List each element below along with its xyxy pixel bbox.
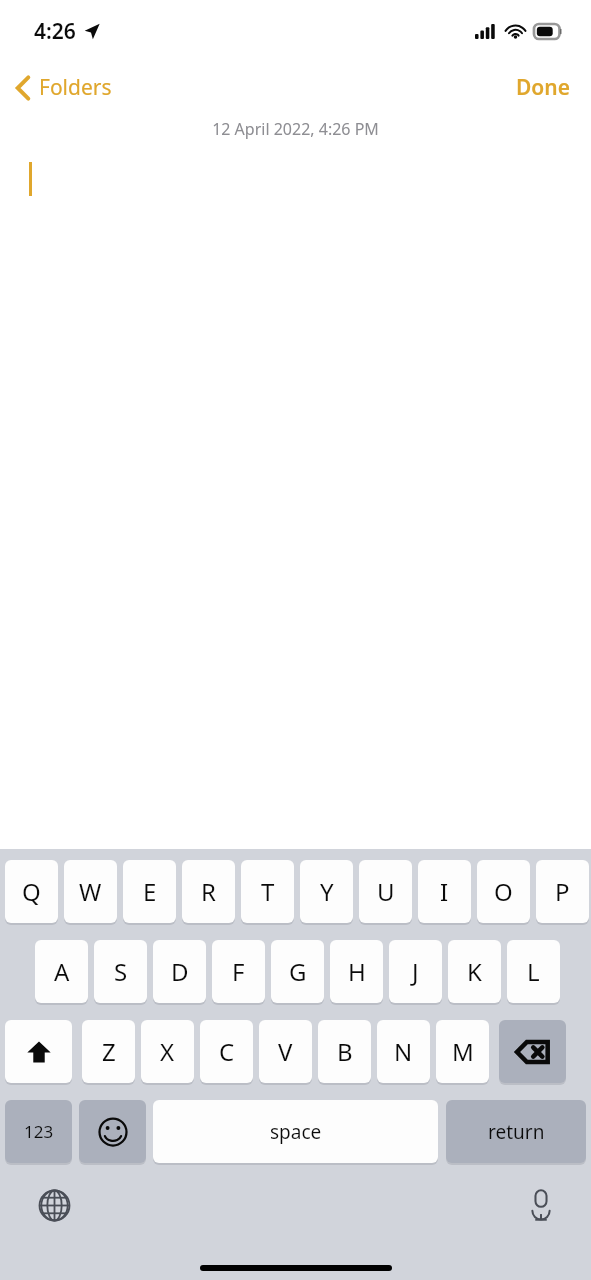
staticText: Folders [39, 73, 112, 102]
button[interactable]: Switch keyboard language [30, 1181, 79, 1230]
staticText: Z [102, 1035, 116, 1068]
button[interactable]: Emoji [79, 1100, 146, 1163]
staticText: A [54, 955, 70, 988]
staticText: 12 April 2022, 4:26 PM [212, 118, 379, 140]
button[interactable]: B [318, 1020, 371, 1083]
button[interactable]: A [35, 940, 88, 1003]
staticText: F [232, 955, 245, 988]
staticText: I [440, 875, 449, 908]
button[interactable]: K [448, 940, 501, 1003]
staticText: W [79, 875, 102, 908]
button[interactable]: U [359, 860, 412, 923]
button[interactable]: J [389, 940, 442, 1003]
button[interactable]: Y [300, 860, 353, 923]
button[interactable]: N [377, 1020, 430, 1083]
button[interactable]: F [212, 940, 265, 1003]
staticText: O [494, 875, 513, 908]
staticText: D [171, 955, 189, 988]
button[interactable]: Shift [5, 1020, 72, 1083]
button[interactable]: S [94, 940, 147, 1003]
button[interactable]: X [141, 1020, 194, 1083]
staticText: J [412, 955, 419, 988]
button[interactable]: Backspace [499, 1020, 566, 1083]
button[interactable]: R [182, 860, 235, 923]
staticText: Q [22, 875, 41, 908]
button[interactable]: return [446, 1100, 586, 1163]
button[interactable]: Q [5, 860, 58, 923]
button[interactable]: Dictation [521, 1181, 561, 1230]
button[interactable]: 123 [5, 1100, 72, 1163]
staticText: B [337, 1035, 353, 1068]
staticText: G [289, 955, 307, 988]
button[interactable]: space [153, 1100, 438, 1163]
staticText: V [278, 1035, 293, 1068]
button[interactable]: D [153, 940, 206, 1003]
button[interactable]: E [123, 860, 176, 923]
staticText: 123 [24, 1120, 54, 1143]
staticText: M [452, 1035, 474, 1068]
staticText: P [555, 875, 570, 908]
staticText: R [201, 875, 216, 908]
staticText: S [114, 955, 128, 988]
button[interactable]: L [507, 940, 560, 1003]
button[interactable]: P [536, 860, 589, 923]
button[interactable]: H [330, 940, 383, 1003]
staticText: return [488, 1119, 545, 1145]
staticText: Done [516, 73, 571, 102]
staticText: N [394, 1035, 413, 1068]
staticText: L [527, 955, 540, 988]
button[interactable]: T [241, 860, 294, 923]
button[interactable]: W [64, 860, 117, 923]
staticText: U [377, 875, 395, 908]
button[interactable]: Z [82, 1020, 135, 1083]
button[interactable]: G [271, 940, 324, 1003]
staticText: C [219, 1035, 235, 1068]
button[interactable]: Folders [0, 67, 124, 108]
staticText: X [160, 1035, 175, 1068]
staticText: space [270, 1119, 322, 1145]
button[interactable]: V [259, 1020, 312, 1083]
staticText: Y [320, 875, 334, 908]
staticText: H [348, 955, 366, 988]
staticText: K [467, 955, 482, 988]
staticText: 4:26 [34, 17, 76, 46]
button[interactable]: O [477, 860, 530, 923]
button[interactable]: I [418, 860, 471, 923]
staticText: T [261, 875, 275, 908]
button[interactable]: M [436, 1020, 489, 1083]
staticText: E [143, 875, 157, 908]
button[interactable]: C [200, 1020, 253, 1083]
button[interactable]: Done [500, 67, 591, 108]
